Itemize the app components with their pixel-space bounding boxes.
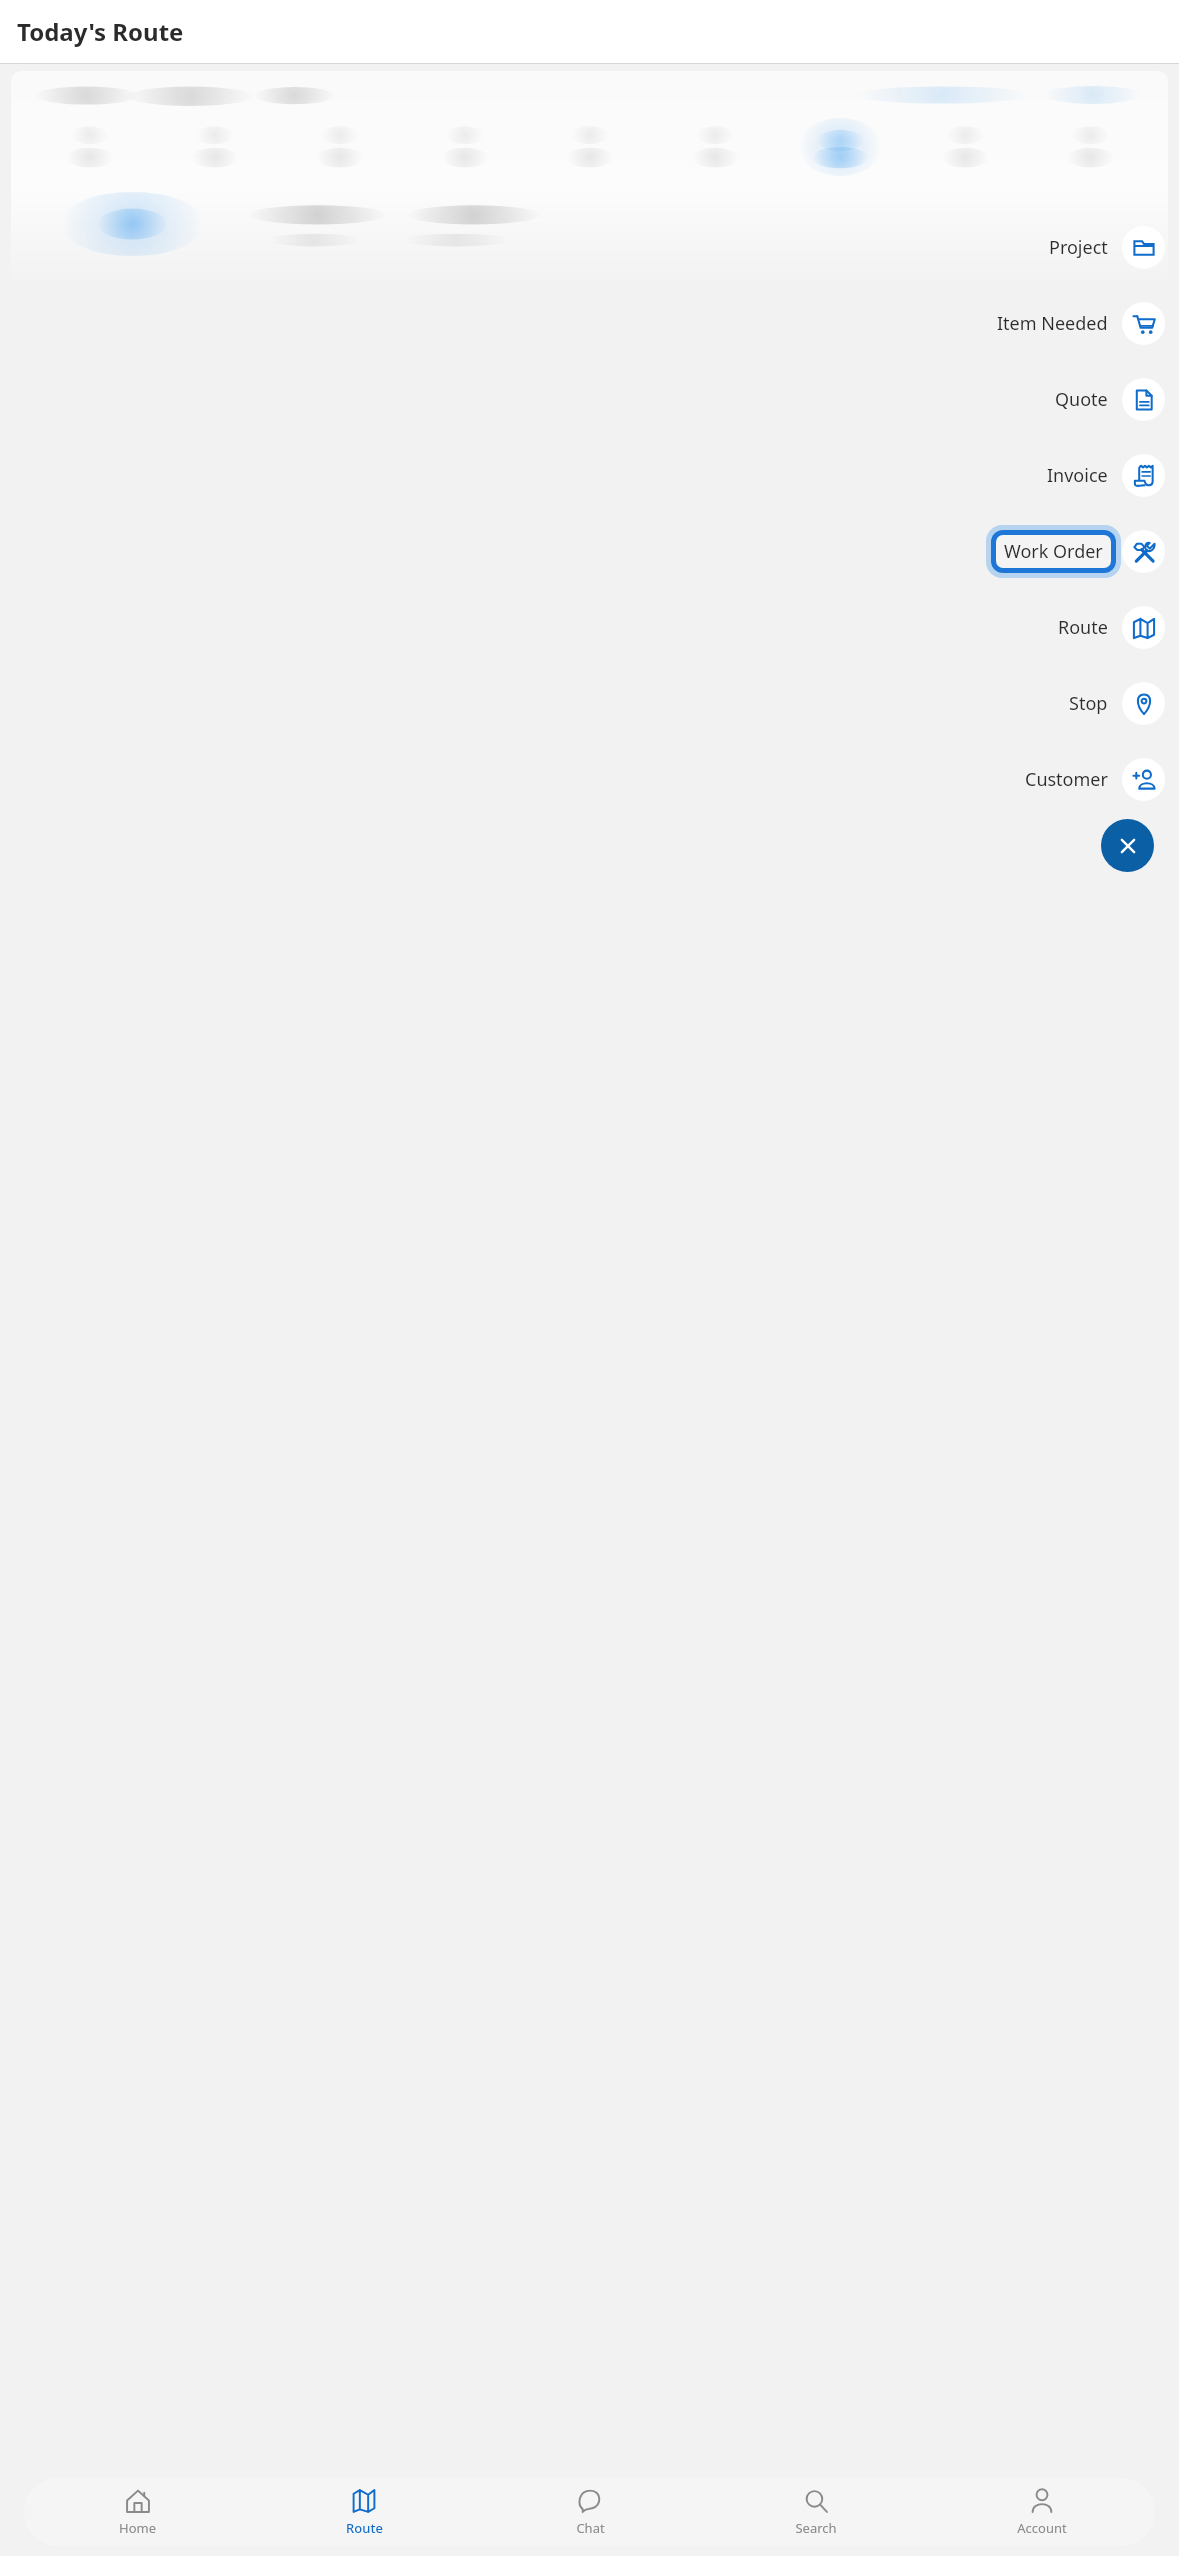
button[interactable]: Search: [703, 2478, 929, 2546]
button[interactable]: Route: [251, 2478, 477, 2546]
staticText: Chat: [576, 2519, 605, 2537]
staticText: Search: [795, 2519, 837, 2537]
button[interactable]: Work Order: [986, 521, 1165, 581]
staticText: Stop: [1069, 691, 1108, 716]
staticText: Route: [346, 2519, 383, 2537]
button[interactable]: Stop: [1069, 673, 1165, 733]
button[interactable]: Home: [24, 2478, 251, 2546]
button[interactable]: Quote: [1055, 369, 1165, 429]
staticText: Quote: [1055, 387, 1108, 412]
staticText: Customer: [1025, 767, 1108, 792]
staticText: Invoice: [1047, 463, 1108, 488]
button[interactable]: Item Needed: [997, 293, 1165, 353]
button[interactable]: Route: [1058, 597, 1165, 657]
button[interactable]: Close menu: [1101, 819, 1154, 872]
staticText: Work Order: [1004, 539, 1103, 564]
button[interactable]: Customer: [1025, 749, 1165, 809]
staticText: Home: [119, 2519, 156, 2537]
button[interactable]: Account: [929, 2478, 1155, 2546]
staticText: Account: [1017, 2519, 1067, 2537]
staticText: Route: [1058, 615, 1108, 640]
staticText: Project: [1049, 235, 1108, 260]
button[interactable]: Project: [1049, 217, 1165, 277]
staticText: Today's Route: [17, 15, 184, 48]
button[interactable]: Invoice: [1047, 445, 1165, 505]
button[interactable]: Chat: [477, 2478, 703, 2546]
staticText: Item Needed: [997, 311, 1108, 336]
